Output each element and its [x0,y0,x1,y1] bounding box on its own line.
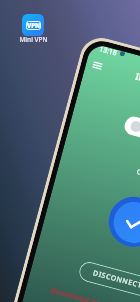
staticText: ON [135,167,140,180]
button[interactable]: Mini VPN [22,14,44,36]
button[interactable]: DISCONNECT [77,260,140,299]
staticText: VPN [27,22,40,30]
button[interactable]: Connected [103,191,140,252]
staticText: Internet [134,69,140,91]
staticText: DISCONNECT [92,268,140,291]
staticText: Mini VPN [19,35,48,44]
staticText: Download now [49,284,109,302]
staticText: 13:18 [98,45,118,58]
button[interactable]: Menu [91,59,104,72]
button[interactable]: Germany [122,114,140,150]
